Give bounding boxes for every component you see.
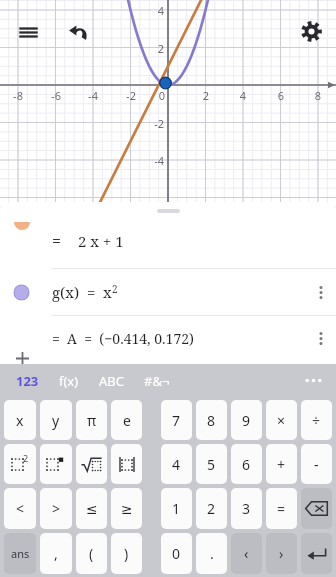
staticText: ) (124, 544, 129, 563)
staticText: e (123, 411, 131, 430)
staticText: 2 (112, 282, 118, 296)
button[interactable]: π (76, 400, 107, 440)
staticText: x (16, 411, 24, 430)
button[interactable]: More options (306, 316, 336, 360)
staticText: ( (89, 544, 94, 563)
staticText: = (52, 230, 61, 252)
staticText: -8 (6, 88, 30, 103)
button[interactable]: > (40, 488, 72, 529)
button[interactable]: 123 (6, 364, 49, 397)
staticText: ABC (99, 372, 124, 390)
button[interactable]: More options (306, 269, 336, 315)
staticText: -6 (44, 88, 68, 103)
staticText: -4 (81, 88, 105, 103)
staticText: 2 (194, 88, 218, 103)
staticText: 4 (141, 3, 164, 18)
staticText: 5 (207, 455, 216, 474)
staticText: 2 x + 1 (78, 231, 124, 251)
staticText: , (54, 544, 58, 563)
button[interactable]: Undo (61, 14, 97, 50)
button[interactable]: 8 (196, 400, 227, 440)
button[interactable]: 0 (161, 533, 192, 574)
button[interactable]: + (266, 444, 297, 484)
button[interactable]: Power (40, 444, 72, 484)
staticText: -2 (141, 116, 164, 131)
staticText: - (314, 455, 319, 474)
staticText: + (277, 455, 286, 474)
staticText: g(x) = x (52, 282, 112, 302)
staticText: > (52, 499, 61, 518)
staticText: × (277, 411, 286, 430)
button[interactable]: g(x) = x (0, 269, 336, 315)
staticText: = A = (−0.414, 0.172) (52, 329, 306, 348)
button[interactable]: ABC (89, 364, 134, 397)
button[interactable]: 7 (161, 400, 192, 440)
staticText: 6 (242, 455, 251, 474)
button[interactable]: 6 (231, 444, 262, 484)
button[interactable]: < (4, 488, 36, 529)
button[interactable]: Resize panel (157, 209, 180, 213)
staticText: -2 (119, 88, 143, 103)
staticText: 4 (231, 88, 255, 103)
button[interactable]: = (0, 214, 336, 268)
button[interactable]: , (40, 533, 72, 574)
button[interactable]: Square root (76, 444, 107, 484)
button[interactable]: = (266, 488, 297, 529)
button[interactable]: × (266, 400, 297, 440)
staticText: π (87, 411, 97, 430)
staticText: 123 (16, 372, 39, 390)
button[interactable]: ans (4, 533, 36, 574)
button[interactable]: Enter (301, 533, 332, 574)
staticText: = (277, 499, 286, 518)
staticText: 0 (172, 544, 181, 563)
button[interactable]: Settings (293, 13, 329, 49)
staticText: 8 (306, 88, 330, 103)
staticText: 9 (242, 411, 251, 430)
button[interactable]: #&¬ (134, 364, 180, 397)
button[interactable]: ) (111, 533, 142, 574)
button[interactable]: 1 (161, 488, 192, 529)
staticText: y (52, 411, 60, 430)
staticText: ≤ (86, 501, 98, 517)
staticText: 2 (207, 499, 216, 518)
button[interactable]: More keyboard options (296, 364, 330, 397)
staticText: 6 (269, 88, 293, 103)
button[interactable]: - (301, 444, 332, 484)
staticText: ÷ (312, 411, 321, 430)
staticText: < (16, 499, 25, 518)
button[interactable]: 4 (161, 444, 192, 484)
button[interactable]: ÷ (301, 400, 332, 440)
button[interactable]: 9 (231, 400, 262, 440)
button[interactable]: y (40, 400, 72, 440)
staticText: 0 (152, 88, 165, 103)
button[interactable]: Square (4, 444, 36, 484)
button[interactable]: Backspace (301, 488, 332, 529)
staticText: ▪ (58, 454, 65, 464)
staticText: › (279, 544, 284, 563)
button[interactable]: › (266, 533, 297, 574)
staticText: ans (11, 546, 30, 561)
button[interactable]: Absolute value (111, 444, 142, 484)
button[interactable]: x (4, 400, 36, 440)
staticText: ≥ (121, 501, 133, 517)
button[interactable]: ≤ (76, 488, 107, 529)
staticText: 7 (172, 411, 181, 430)
button[interactable]: f(x) (49, 364, 89, 397)
button[interactable]: ≥ (111, 488, 142, 529)
button[interactable]: . (196, 533, 227, 574)
staticText: ‹ (244, 544, 249, 563)
button[interactable]: Menu (10, 14, 46, 50)
button[interactable]: 2 (196, 488, 227, 529)
staticText: . (210, 544, 214, 563)
staticText: 8 (207, 411, 216, 430)
button[interactable]: e (111, 400, 142, 440)
button[interactable]: ( (76, 533, 107, 574)
staticText: 3 (242, 499, 251, 518)
button[interactable]: ‹ (231, 533, 262, 574)
button[interactable]: 3 (231, 488, 262, 529)
button[interactable]: Add expression (12, 348, 32, 364)
staticText: -4 (141, 153, 164, 168)
button[interactable]: 5 (196, 444, 227, 484)
staticText: 2 (141, 41, 164, 56)
button[interactable]: = A = (−0.414, 0.172) (0, 316, 336, 360)
